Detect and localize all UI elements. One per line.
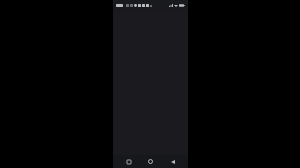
- button[interactable]: Home: [144, 155, 157, 168]
- button[interactable]: Back: [166, 155, 179, 168]
- button[interactable]: Recent apps: [122, 155, 135, 168]
